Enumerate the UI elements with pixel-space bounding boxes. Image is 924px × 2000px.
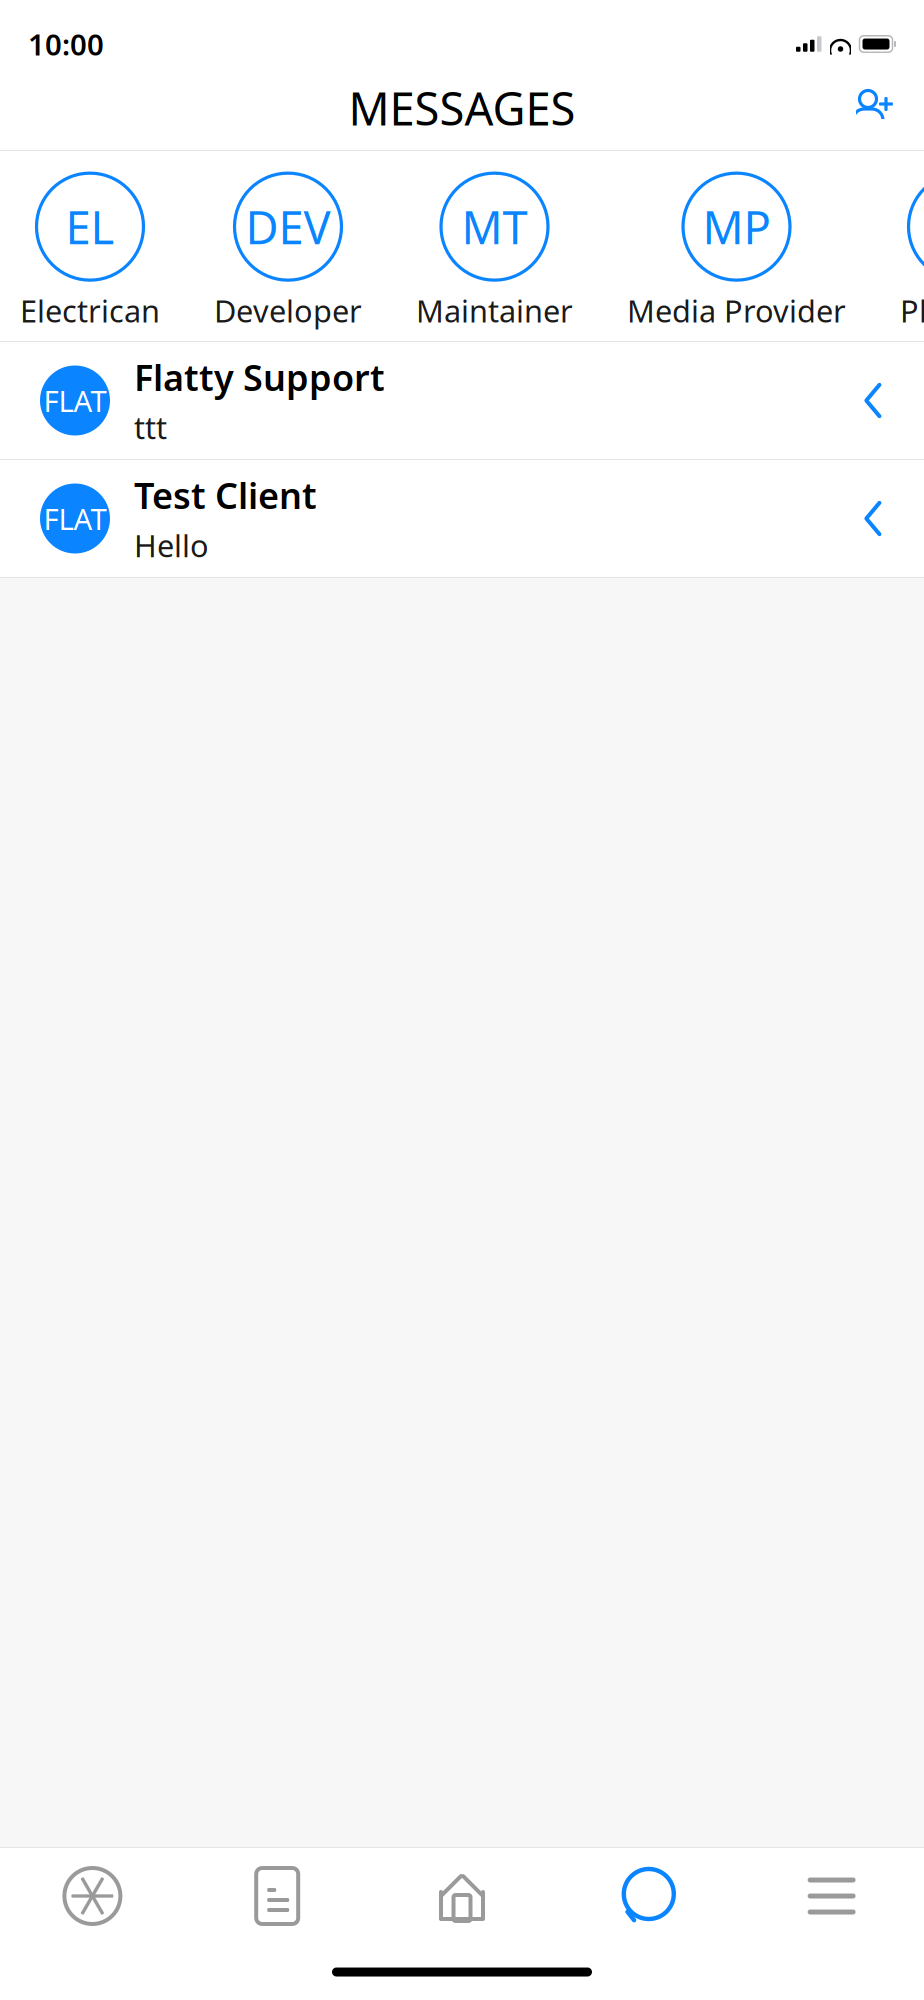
button[interactable]: Menu [739, 1848, 924, 1944]
staticText: Electrican [20, 290, 160, 331]
button[interactable]: MP [621, 173, 852, 331]
staticText: Hello [134, 525, 209, 566]
staticText: Test Client [134, 471, 317, 519]
button[interactable]: DEV [208, 173, 368, 331]
button[interactable]: FLAT [0, 342, 924, 460]
staticText: 10:00 [28, 24, 104, 63]
staticText: EL [65, 196, 114, 257]
staticText: Developer [214, 290, 362, 331]
staticText: Media Provider [627, 290, 846, 331]
staticText: DEV [245, 196, 330, 257]
button[interactable]: PL [894, 173, 924, 331]
staticText: FLAT [43, 381, 106, 420]
staticText: Plumber [900, 290, 924, 331]
button[interactable]: Documents [185, 1848, 370, 1944]
button[interactable]: Home [370, 1848, 554, 1944]
staticText: Flatty Support [134, 353, 385, 401]
button[interactable]: Messages [554, 1848, 739, 1944]
staticText: MESSAGES [348, 78, 575, 138]
staticText: MP [702, 196, 770, 257]
button[interactable]: Add contact [838, 80, 904, 136]
button[interactable]: EL [14, 173, 166, 331]
button[interactable]: Camera [0, 1848, 185, 1944]
staticText: Maintainer [416, 290, 573, 331]
staticText: ttt [134, 407, 167, 448]
staticText: FLAT [43, 499, 106, 538]
staticText: MT [461, 196, 527, 257]
button[interactable]: FLAT [0, 460, 924, 578]
button[interactable]: MT [410, 173, 579, 331]
